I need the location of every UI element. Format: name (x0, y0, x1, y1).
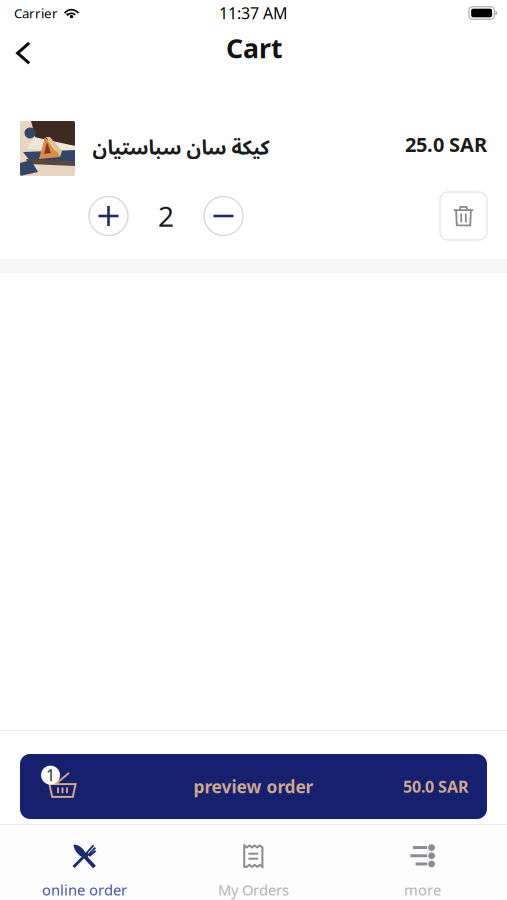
button[interactable]: Increase quantity (89, 196, 128, 235)
staticText: online order (42, 880, 127, 900)
staticText: 25.0 SAR (405, 131, 487, 158)
button[interactable]: Decrease quantity (204, 196, 243, 235)
staticText: more (404, 880, 441, 900)
button[interactable]: Delete item (440, 192, 487, 240)
button[interactable]: My Orders (169, 825, 338, 900)
button[interactable]: more (338, 825, 507, 900)
staticText: Cart (226, 30, 283, 66)
staticText: 1 (46, 764, 55, 786)
staticText: 50.0 SAR (403, 776, 468, 797)
button[interactable]: Back (0, 27, 49, 78)
staticText: My Orders (218, 880, 289, 900)
button[interactable]: online order (0, 825, 169, 900)
staticText: 2 (158, 197, 174, 235)
staticText: preview order (193, 775, 313, 798)
staticText: 11:37 AM (219, 2, 288, 24)
staticText: Carrier (14, 4, 58, 22)
button[interactable]: preview order (20, 754, 487, 819)
staticText: كيكة سان سباستيان (92, 127, 269, 169)
